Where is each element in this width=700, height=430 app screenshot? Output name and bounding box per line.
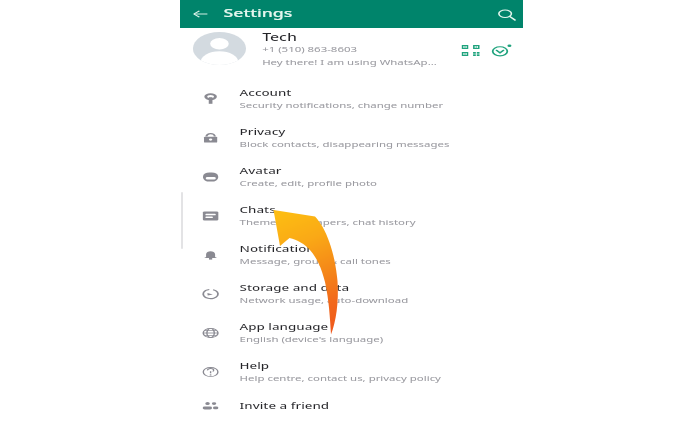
button[interactable]: Storage and data (180, 274, 523, 313)
button[interactable]: Notifications (180, 235, 523, 274)
button[interactable]: Search (499, 10, 515, 20)
staticText: Network usage, auto-download (240, 295, 409, 305)
button[interactable]: Back (193, 10, 207, 18)
button[interactable]: Help (180, 352, 523, 391)
button[interactable]: QR code (462, 45, 479, 56)
button[interactable]: Chats (180, 196, 523, 235)
staticText: Avatar (240, 165, 281, 176)
button[interactable]: Invite a friend (180, 391, 523, 430)
button[interactable]: Status (491, 44, 512, 57)
staticText: Storage and data (240, 282, 351, 293)
staticText: Help centre, contact us, privacy policy (240, 373, 442, 383)
button[interactable]: Account (180, 79, 523, 118)
staticText: Hey there! I am using WhatsAp… (262, 57, 438, 67)
staticText: Help (240, 360, 270, 371)
staticText: Invite a friend (240, 400, 330, 411)
staticText: +1 (510) 863-8603 (262, 44, 357, 54)
staticText: Account (240, 87, 293, 98)
staticText: Block contacts, disappearing messages (240, 139, 451, 149)
staticText: Security notifications, change number (240, 100, 444, 110)
button[interactable]: Avatar (180, 157, 523, 196)
staticText: Themes, wallpapers, chat history (240, 217, 417, 227)
staticText: Settings (223, 5, 293, 20)
staticText: App language (240, 321, 330, 332)
staticText: Message, group & call tones (240, 256, 391, 266)
staticText: Create, edit, profile photo (240, 178, 378, 188)
staticText: Tech (262, 30, 297, 43)
staticText: Privacy (240, 126, 286, 137)
button[interactable]: App language (180, 313, 523, 352)
staticText: Notifications (240, 243, 322, 254)
staticText: English (device's language) (240, 334, 384, 344)
button[interactable]: Privacy (180, 118, 523, 157)
staticText: Chats (240, 204, 277, 215)
button[interactable]: Tech (180, 28, 523, 79)
